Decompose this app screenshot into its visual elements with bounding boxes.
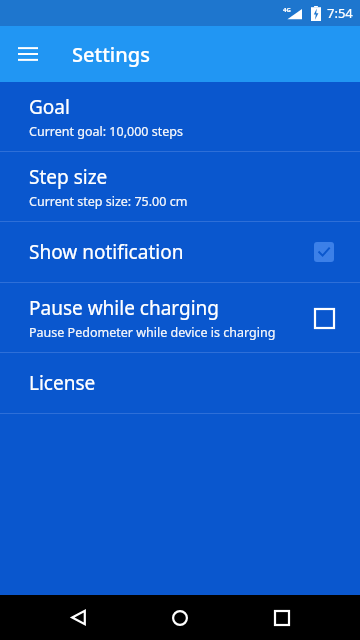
staticText: Show notification xyxy=(29,239,184,265)
staticText: 4G xyxy=(283,6,291,14)
staticText: Step size xyxy=(29,164,108,190)
button[interactable]: Checked xyxy=(304,232,344,272)
button[interactable]: Home xyxy=(156,595,204,640)
staticText: Pause while charging xyxy=(29,295,219,321)
staticText: Current goal: 10,000 steps xyxy=(29,123,183,140)
button[interactable]: Recent apps xyxy=(258,595,306,640)
button[interactable]: Show notification xyxy=(0,222,360,282)
staticText: 7:54 xyxy=(327,4,353,22)
staticText: Settings xyxy=(72,41,150,68)
staticText: Current step size: 75.00 cm xyxy=(29,193,188,210)
staticText: License xyxy=(29,370,96,396)
button[interactable]: Goal xyxy=(0,82,360,151)
button[interactable]: Pause while charging xyxy=(0,283,360,352)
staticText: Goal xyxy=(29,94,70,120)
button[interactable]: Unchecked xyxy=(304,298,344,338)
staticText: Pause Pedometer while device is charging xyxy=(29,324,276,341)
button[interactable]: Back xyxy=(54,595,102,640)
button[interactable]: Open navigation menu xyxy=(4,30,52,78)
button[interactable]: License xyxy=(0,353,360,413)
button[interactable]: Step size xyxy=(0,152,360,221)
